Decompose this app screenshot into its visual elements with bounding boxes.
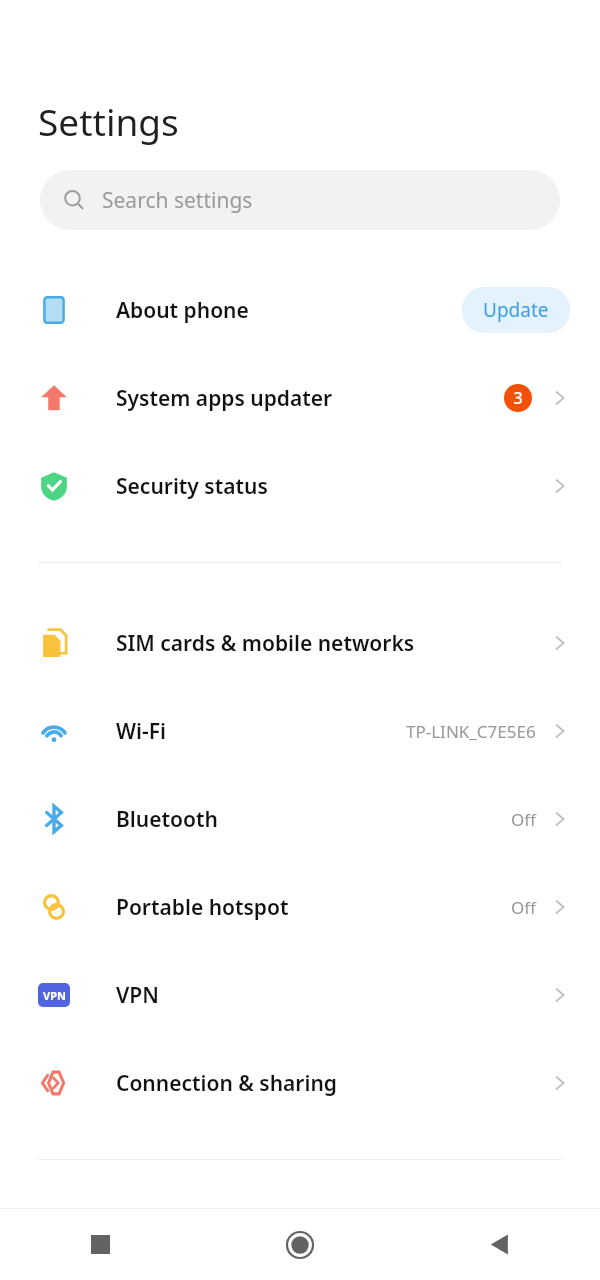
button[interactable]: Connection & sharing xyxy=(0,1039,600,1127)
button[interactable]: Update xyxy=(462,287,570,333)
button[interactable]: Portable hotspot xyxy=(0,863,600,951)
button[interactable]: Wi-Fi xyxy=(0,687,600,775)
staticText: System apps updater xyxy=(116,384,504,413)
staticText: Bluetooth xyxy=(116,805,511,834)
staticText: 3 xyxy=(513,387,523,409)
staticText: VPN xyxy=(116,981,550,1010)
button[interactable]: System apps updater xyxy=(0,354,600,442)
staticText: Settings xyxy=(38,96,179,146)
button[interactable]: SIM cards & mobile networks xyxy=(0,599,600,687)
staticText: Off xyxy=(511,896,536,919)
staticText: Update xyxy=(483,297,549,323)
staticText: VPN xyxy=(43,988,66,1003)
button[interactable]: Home xyxy=(200,1209,400,1280)
button[interactable]: Back xyxy=(400,1209,600,1280)
staticText: Portable hotspot xyxy=(116,893,511,922)
staticText: Wi-Fi xyxy=(116,717,406,746)
staticText: Off xyxy=(511,808,536,831)
button[interactable]: Security status xyxy=(0,442,600,530)
button[interactable]: VPN xyxy=(0,951,600,1039)
button[interactable]: Search settings xyxy=(40,170,560,230)
staticText: Connection & sharing xyxy=(116,1069,550,1098)
staticText: About phone xyxy=(116,296,462,325)
staticText: Security status xyxy=(116,472,550,501)
staticText: Search settings xyxy=(102,186,253,215)
button[interactable]: Bluetooth xyxy=(0,775,600,863)
staticText: SIM cards & mobile networks xyxy=(116,629,550,658)
button[interactable]: About phone xyxy=(0,266,600,354)
button[interactable]: Recent apps xyxy=(0,1209,200,1280)
staticText: TP-LINK_C7E5E6 xyxy=(406,720,536,743)
